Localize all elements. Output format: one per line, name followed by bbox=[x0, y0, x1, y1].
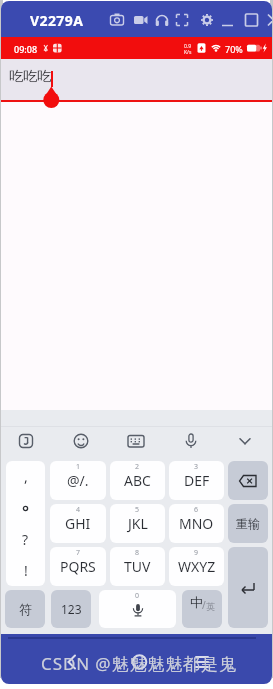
button[interactable] bbox=[14, 429, 38, 453]
button[interactable] bbox=[153, 9, 173, 31]
staticText: @/. bbox=[67, 471, 89, 490]
staticText: DEF bbox=[184, 471, 210, 490]
button[interactable]: 吃吃吃 bbox=[1, 59, 272, 100]
staticText: WXYZ bbox=[178, 557, 216, 576]
button[interactable]: 123 bbox=[51, 590, 91, 628]
staticText: JKL bbox=[128, 514, 148, 533]
button[interactable] bbox=[263, 9, 272, 31]
staticText: 5 bbox=[135, 505, 140, 515]
staticText: 6 bbox=[194, 505, 199, 515]
staticText: 3 bbox=[194, 462, 199, 472]
button[interactable]: 0 bbox=[99, 590, 176, 628]
button[interactable] bbox=[173, 9, 193, 31]
button[interactable]: 4 bbox=[50, 504, 106, 543]
staticText: 中 bbox=[190, 594, 203, 610]
button[interactable] bbox=[57, 647, 87, 677]
button[interactable] bbox=[124, 647, 154, 677]
staticText: MNO bbox=[179, 514, 214, 533]
button[interactable]: 重输 bbox=[228, 504, 268, 543]
staticText: 0.9 K/s bbox=[184, 43, 192, 56]
staticText: GHI bbox=[65, 514, 91, 533]
button[interactable] bbox=[228, 547, 268, 628]
staticText: 2 bbox=[135, 462, 140, 472]
staticText: TUV bbox=[124, 557, 151, 576]
staticText: 123 bbox=[61, 601, 82, 617]
staticText: CSDN @魅魅魅魅都是鬼 bbox=[41, 652, 237, 675]
button[interactable]: 8 bbox=[110, 547, 165, 586]
button[interactable] bbox=[109, 9, 129, 31]
button[interactable]: 符 bbox=[5, 590, 45, 628]
staticText: V2279A bbox=[30, 11, 84, 30]
staticText: , bbox=[24, 467, 28, 486]
button[interactable] bbox=[69, 429, 93, 453]
button[interactable] bbox=[218, 9, 236, 31]
button[interactable] bbox=[228, 461, 268, 500]
button[interactable] bbox=[197, 9, 217, 31]
staticText: 英 bbox=[206, 601, 215, 612]
staticText: / bbox=[202, 598, 206, 612]
staticText: 4 bbox=[76, 505, 81, 515]
button[interactable]: 6 bbox=[169, 504, 224, 543]
button[interactable]: 中 bbox=[182, 590, 222, 628]
staticText: 0 bbox=[135, 591, 140, 601]
staticText: ABC bbox=[124, 471, 151, 490]
staticText: 重输 bbox=[236, 516, 260, 531]
staticText: ? bbox=[22, 530, 29, 549]
button[interactable]: , bbox=[6, 461, 45, 586]
button[interactable]: 3 bbox=[169, 461, 224, 500]
button[interactable]: 9 bbox=[169, 547, 224, 586]
staticText: 吃吃吃 bbox=[9, 68, 51, 86]
button[interactable] bbox=[187, 647, 217, 677]
staticText: 70% bbox=[225, 43, 243, 55]
staticText: 符 bbox=[19, 601, 32, 617]
button[interactable] bbox=[124, 429, 148, 453]
staticText: 8 bbox=[135, 548, 140, 558]
staticText: 09:08 bbox=[14, 43, 38, 55]
button[interactable]: 7 bbox=[50, 547, 106, 586]
button[interactable] bbox=[131, 9, 151, 31]
button[interactable] bbox=[233, 429, 257, 453]
staticText: PQRS bbox=[60, 557, 96, 576]
staticText: 7 bbox=[76, 548, 81, 558]
button[interactable] bbox=[179, 429, 203, 453]
staticText: 1 bbox=[76, 462, 81, 472]
button[interactable]: 5 bbox=[110, 504, 165, 543]
staticText: 9 bbox=[194, 548, 199, 558]
staticText: ! bbox=[24, 561, 28, 580]
button[interactable] bbox=[241, 9, 261, 31]
button[interactable]: 2 bbox=[110, 461, 165, 500]
button[interactable]: 1 bbox=[50, 461, 106, 500]
